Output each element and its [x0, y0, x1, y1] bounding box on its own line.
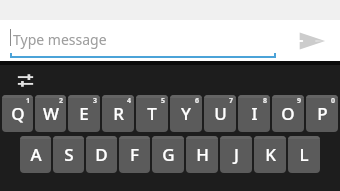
staticText: 7: [229, 96, 234, 106]
staticText: W: [43, 102, 59, 125]
button[interactable]: Q: [2, 95, 33, 132]
staticText: 3: [93, 96, 98, 106]
staticText: D: [95, 143, 108, 166]
staticText: A: [30, 143, 42, 166]
staticText: Type message: [13, 30, 107, 49]
staticText: 2: [59, 96, 64, 106]
staticText: K: [265, 143, 276, 166]
button[interactable]: Type message: [10, 24, 276, 56]
staticText: 9: [297, 96, 302, 106]
staticText: Q: [11, 102, 25, 125]
button[interactable]: Y: [170, 95, 202, 132]
button[interactable]: G: [152, 136, 184, 173]
staticText: R: [113, 102, 124, 125]
staticText: O: [281, 102, 295, 125]
button[interactable]: Keyboard settings: [8, 66, 42, 94]
staticText: F: [130, 143, 139, 166]
staticText: Y: [181, 102, 191, 125]
button[interactable]: J: [220, 136, 252, 173]
button[interactable]: I: [238, 95, 270, 132]
staticText: 8: [263, 96, 268, 106]
staticText: L: [299, 143, 309, 166]
button[interactable]: L: [288, 136, 320, 173]
staticText: 5: [161, 96, 166, 106]
button[interactable]: R: [102, 95, 134, 132]
button[interactable]: E: [68, 95, 100, 132]
button[interactable]: P: [306, 95, 338, 132]
staticText: H: [196, 143, 209, 166]
staticText: T: [147, 102, 157, 125]
staticText: U: [214, 102, 227, 125]
button[interactable]: A: [20, 136, 51, 173]
button[interactable]: K: [254, 136, 286, 173]
staticText: G: [162, 143, 175, 166]
staticText: I: [251, 102, 258, 125]
button[interactable]: O: [272, 95, 304, 132]
staticText: 0: [331, 96, 336, 106]
staticText: P: [317, 102, 328, 125]
button[interactable]: D: [86, 136, 117, 173]
staticText: E: [79, 102, 89, 125]
staticText: J: [234, 143, 239, 166]
staticText: 6: [195, 96, 200, 106]
button[interactable]: W: [35, 95, 66, 132]
button[interactable]: U: [204, 95, 236, 132]
staticText: S: [64, 143, 74, 166]
button[interactable]: Send: [292, 21, 332, 61]
button[interactable]: S: [53, 136, 84, 173]
staticText: 1: [26, 96, 31, 106]
button[interactable]: T: [136, 95, 168, 132]
staticText: 4: [127, 96, 132, 106]
button[interactable]: F: [119, 136, 150, 173]
button[interactable]: H: [186, 136, 218, 173]
